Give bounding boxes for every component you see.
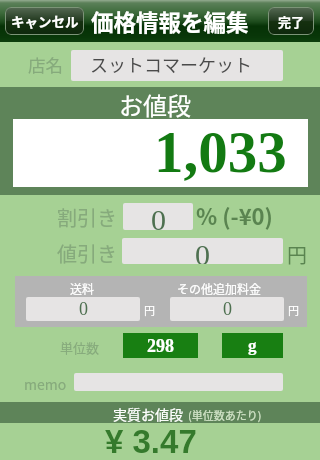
button[interactable]: 完了 <box>268 7 314 35</box>
staticText: g <box>248 336 257 355</box>
staticText: 店名 <box>28 52 63 77</box>
button[interactable]: g <box>222 333 283 358</box>
staticText: 実質お値段 <box>113 404 183 424</box>
button[interactable]: 0 <box>123 203 193 230</box>
button[interactable]: キャンセル <box>5 7 84 35</box>
staticText: 単位数 <box>60 338 100 357</box>
staticText: 0 <box>151 203 166 230</box>
staticText: 円 <box>144 302 155 318</box>
button[interactable] <box>71 50 283 81</box>
button[interactable]: 0 <box>122 238 283 264</box>
staticText: その他追加料金 <box>177 280 262 297</box>
staticText: % (-¥0) <box>196 199 273 231</box>
staticText: お値段 <box>119 87 191 122</box>
staticText: 完了 <box>278 12 305 31</box>
staticText: 送料 <box>70 280 95 297</box>
staticText: 価格情報を編集 <box>91 5 249 38</box>
button[interactable]: 0 <box>170 297 284 321</box>
staticText: 0 <box>79 299 88 319</box>
button[interactable]: 0 <box>26 297 140 321</box>
staticText: スットコマーケット <box>90 51 252 77</box>
staticText: 0 <box>223 299 232 319</box>
staticText: キャンセル <box>11 11 79 31</box>
staticText: 1,033 <box>154 119 287 184</box>
staticText: 円 <box>288 302 299 318</box>
staticText: 割引き <box>57 203 117 232</box>
button[interactable]: 1,033 <box>13 119 308 187</box>
staticText: (単位数あたり) <box>188 407 262 423</box>
staticText: 298 <box>147 336 174 356</box>
staticText: 0 <box>195 238 210 264</box>
staticText: 値引き <box>57 239 117 268</box>
button[interactable]: 298 <box>123 333 198 358</box>
staticText: memo <box>24 374 67 394</box>
staticText: 円 <box>287 240 307 269</box>
staticText: ¥ 3.47 <box>105 423 197 460</box>
